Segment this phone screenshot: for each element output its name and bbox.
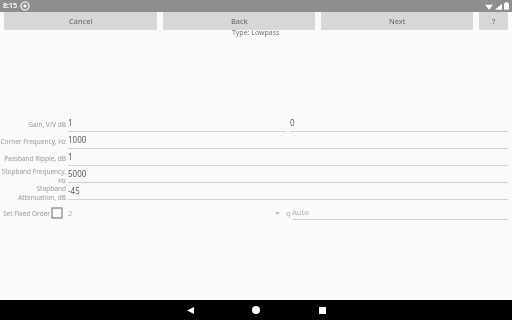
staticText: 2 (68, 208, 73, 218)
staticText: 0 (290, 117, 295, 128)
staticText: Stopband Attenuation, dB (0, 184, 66, 201)
button[interactable]: Back (168, 300, 212, 320)
staticText: Cancel (69, 16, 93, 26)
button[interactable]: Home (234, 300, 278, 320)
button[interactable]: Order dropdown (272, 208, 282, 218)
staticText: Type: Lowpass (232, 28, 280, 38)
staticText: 1 (68, 151, 73, 162)
button[interactable]: -45 (68, 185, 508, 200)
button[interactable]: Recent apps (300, 300, 344, 320)
staticText: Corner Frequency, Hz (0, 137, 66, 146)
button[interactable]: Set Fixed Order (52, 208, 62, 218)
staticText: 5000 (68, 168, 87, 179)
staticText: ? (492, 16, 496, 26)
staticText: Auto (292, 207, 309, 217)
button[interactable]: Next (321, 12, 473, 30)
staticText: -45 (68, 185, 80, 196)
button[interactable]: ? (479, 12, 508, 30)
staticText: Set Fixed Order (3, 209, 50, 218)
staticText: Next (389, 16, 406, 26)
staticText: q (286, 208, 291, 218)
staticText: 1 (68, 117, 73, 128)
staticText: Gain, V/V dB (28, 120, 66, 129)
staticText: 1000 (68, 134, 87, 145)
button[interactable]: 1 (68, 117, 286, 132)
button[interactable]: Back (163, 12, 315, 30)
button[interactable]: 1000 (68, 134, 508, 149)
staticText: Passband Ripple, dB (4, 154, 66, 163)
staticText: 8:15 (3, 1, 17, 11)
button[interactable]: 1 (68, 151, 508, 166)
button[interactable]: 5000 (68, 168, 508, 183)
staticText: Stopband Frequency, Hz (0, 167, 66, 184)
staticText: Back (231, 16, 248, 26)
button[interactable]: Cancel (4, 12, 157, 30)
button[interactable]: 0 (290, 117, 508, 132)
button[interactable]: Auto (292, 207, 508, 220)
